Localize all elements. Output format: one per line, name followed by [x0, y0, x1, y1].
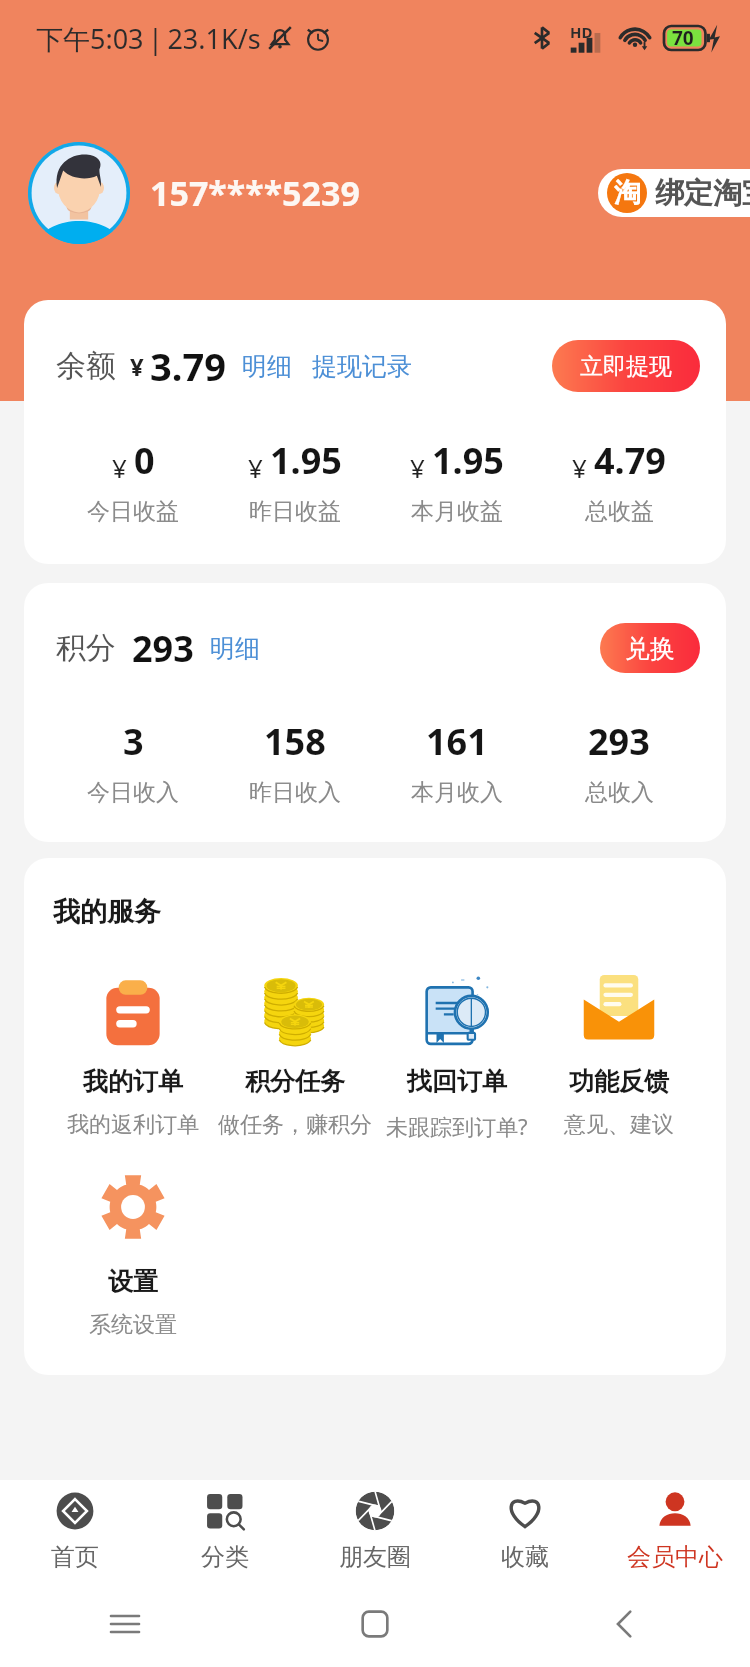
- button[interactable]: 161: [376, 717, 538, 807]
- staticText: 0: [134, 436, 155, 485]
- button[interactable]: Recents: [103, 1602, 147, 1646]
- staticText: 总收益: [585, 497, 654, 526]
- staticText: 朋友圈: [339, 1542, 411, 1572]
- staticText: 系统设置: [89, 1311, 177, 1339]
- staticText: 4.79: [594, 436, 666, 485]
- staticText: ¥: [112, 450, 127, 485]
- staticText: 今日收益: [87, 497, 179, 526]
- button[interactable]: 158: [214, 717, 376, 807]
- staticText: 功能反馈: [569, 1066, 669, 1097]
- staticText: 未跟踪到订单?: [386, 1111, 528, 1141]
- button[interactable]: 功能反馈: [538, 966, 700, 1139]
- staticText: 161: [426, 717, 488, 766]
- button[interactable]: 明细: [210, 627, 260, 670]
- staticText: ¥: [248, 450, 263, 485]
- staticText: ¥: [410, 450, 425, 485]
- staticText: 积分: [56, 629, 116, 667]
- button[interactable]: 朋友圈: [300, 1480, 450, 1580]
- button[interactable]: 293: [538, 717, 700, 807]
- staticText: 我的服务: [53, 895, 161, 929]
- staticText: 昨日收入: [249, 778, 341, 807]
- staticText: 收藏: [501, 1542, 549, 1572]
- staticText: 找回订单: [407, 1066, 507, 1097]
- button[interactable]: 积分任务: [214, 966, 376, 1139]
- button[interactable]: ¥: [538, 436, 700, 526]
- staticText: 意见、建议: [564, 1111, 674, 1139]
- staticText: 明细: [210, 633, 260, 664]
- staticText: 余额: [56, 347, 116, 385]
- button[interactable]: 淘: [598, 169, 750, 217]
- staticText: 157****5239: [150, 170, 360, 216]
- staticText: 做任务，赚积分: [218, 1111, 372, 1139]
- staticText: 兑换: [625, 633, 675, 664]
- button[interactable]: Back: [603, 1602, 647, 1646]
- staticText: 我的订单: [83, 1066, 183, 1097]
- staticText: 今日收入: [87, 778, 179, 807]
- staticText: 首页: [51, 1542, 99, 1572]
- button[interactable]: ¥: [376, 436, 538, 526]
- button[interactable]: 兑换: [600, 623, 700, 673]
- staticText: 下午5:03 | 23.1K/s: [36, 20, 261, 57]
- staticText: 绑定淘宝: [655, 175, 750, 212]
- staticText: 设置: [108, 1266, 158, 1297]
- staticText: 70: [672, 25, 694, 51]
- staticText: 本月收入: [411, 778, 503, 807]
- button[interactable]: ¥: [214, 436, 376, 526]
- button[interactable]: 提现记录: [312, 345, 412, 388]
- staticText: 1.95: [432, 436, 504, 485]
- button[interactable]: ¥: [52, 436, 214, 526]
- button[interactable]: 我的订单: [52, 966, 214, 1139]
- staticText: 明细: [242, 351, 292, 382]
- button[interactable]: 分类: [150, 1480, 300, 1580]
- staticText: 3: [123, 717, 144, 766]
- staticText: 本月收益: [411, 497, 503, 526]
- button[interactable]: 明细: [242, 345, 292, 388]
- staticText: 昨日收益: [249, 497, 341, 526]
- staticText: 我的返利订单: [67, 1111, 199, 1139]
- staticText: 158: [264, 717, 326, 766]
- button[interactable]: 收藏: [450, 1480, 600, 1580]
- staticText: 总收入: [585, 778, 654, 807]
- staticText: 3.79: [150, 340, 226, 392]
- button[interactable]: 找回订单: [376, 966, 538, 1141]
- staticText: 293: [588, 717, 650, 766]
- button[interactable]: 3: [52, 717, 214, 807]
- button[interactable]: 会员中心: [600, 1480, 750, 1580]
- staticText: 分类: [201, 1542, 249, 1572]
- staticText: ¥: [572, 450, 587, 485]
- staticText: 淘: [614, 176, 641, 210]
- staticText: 立即提现: [580, 352, 672, 381]
- staticText: HD: [570, 22, 593, 42]
- staticText: 1.95: [270, 436, 342, 485]
- button[interactable]: 首页: [0, 1480, 150, 1580]
- staticText: 会员中心: [627, 1542, 723, 1572]
- staticText: ¥: [130, 350, 144, 383]
- button[interactable]: Home: [353, 1602, 397, 1646]
- button[interactable]: 设置: [52, 1166, 214, 1339]
- button[interactable]: 立即提现: [552, 340, 700, 392]
- button[interactable]: Avatar: [28, 142, 130, 244]
- staticText: 提现记录: [312, 351, 412, 382]
- staticText: 293: [132, 624, 194, 673]
- staticText: 积分任务: [245, 1066, 345, 1097]
